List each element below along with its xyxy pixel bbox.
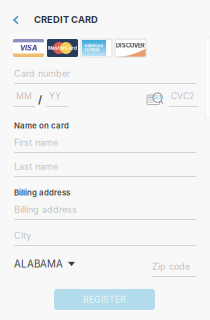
button[interactable]: ALABAMA bbox=[14, 256, 75, 272]
staticText: Name on card bbox=[14, 121, 69, 130]
staticText: AMERICAN EXPRESS bbox=[84, 44, 103, 52]
staticText: Billing address bbox=[14, 188, 70, 197]
staticText: Last name bbox=[14, 161, 58, 172]
staticText: Card number bbox=[14, 68, 70, 79]
staticText: REGISTER bbox=[83, 294, 126, 305]
staticText: MM bbox=[16, 91, 32, 101]
staticText: VISA bbox=[20, 44, 37, 52]
staticText: MasterCard bbox=[48, 45, 77, 51]
staticText: CREDIT CARD bbox=[34, 14, 98, 25]
staticText: 123 bbox=[154, 95, 162, 100]
button[interactable]: Back bbox=[5, 8, 27, 32]
staticText: / bbox=[38, 93, 42, 106]
staticText: First name bbox=[14, 137, 58, 148]
staticText: ALABAMA bbox=[14, 258, 63, 270]
button[interactable]: REGISTER bbox=[54, 289, 155, 310]
staticText: YY bbox=[49, 91, 61, 101]
staticText: Zip code bbox=[152, 261, 190, 272]
staticText: City bbox=[14, 230, 31, 241]
staticText: Billing address bbox=[14, 204, 77, 215]
staticText: DISCOVER bbox=[116, 42, 145, 49]
staticText: CVC2 bbox=[171, 91, 194, 101]
